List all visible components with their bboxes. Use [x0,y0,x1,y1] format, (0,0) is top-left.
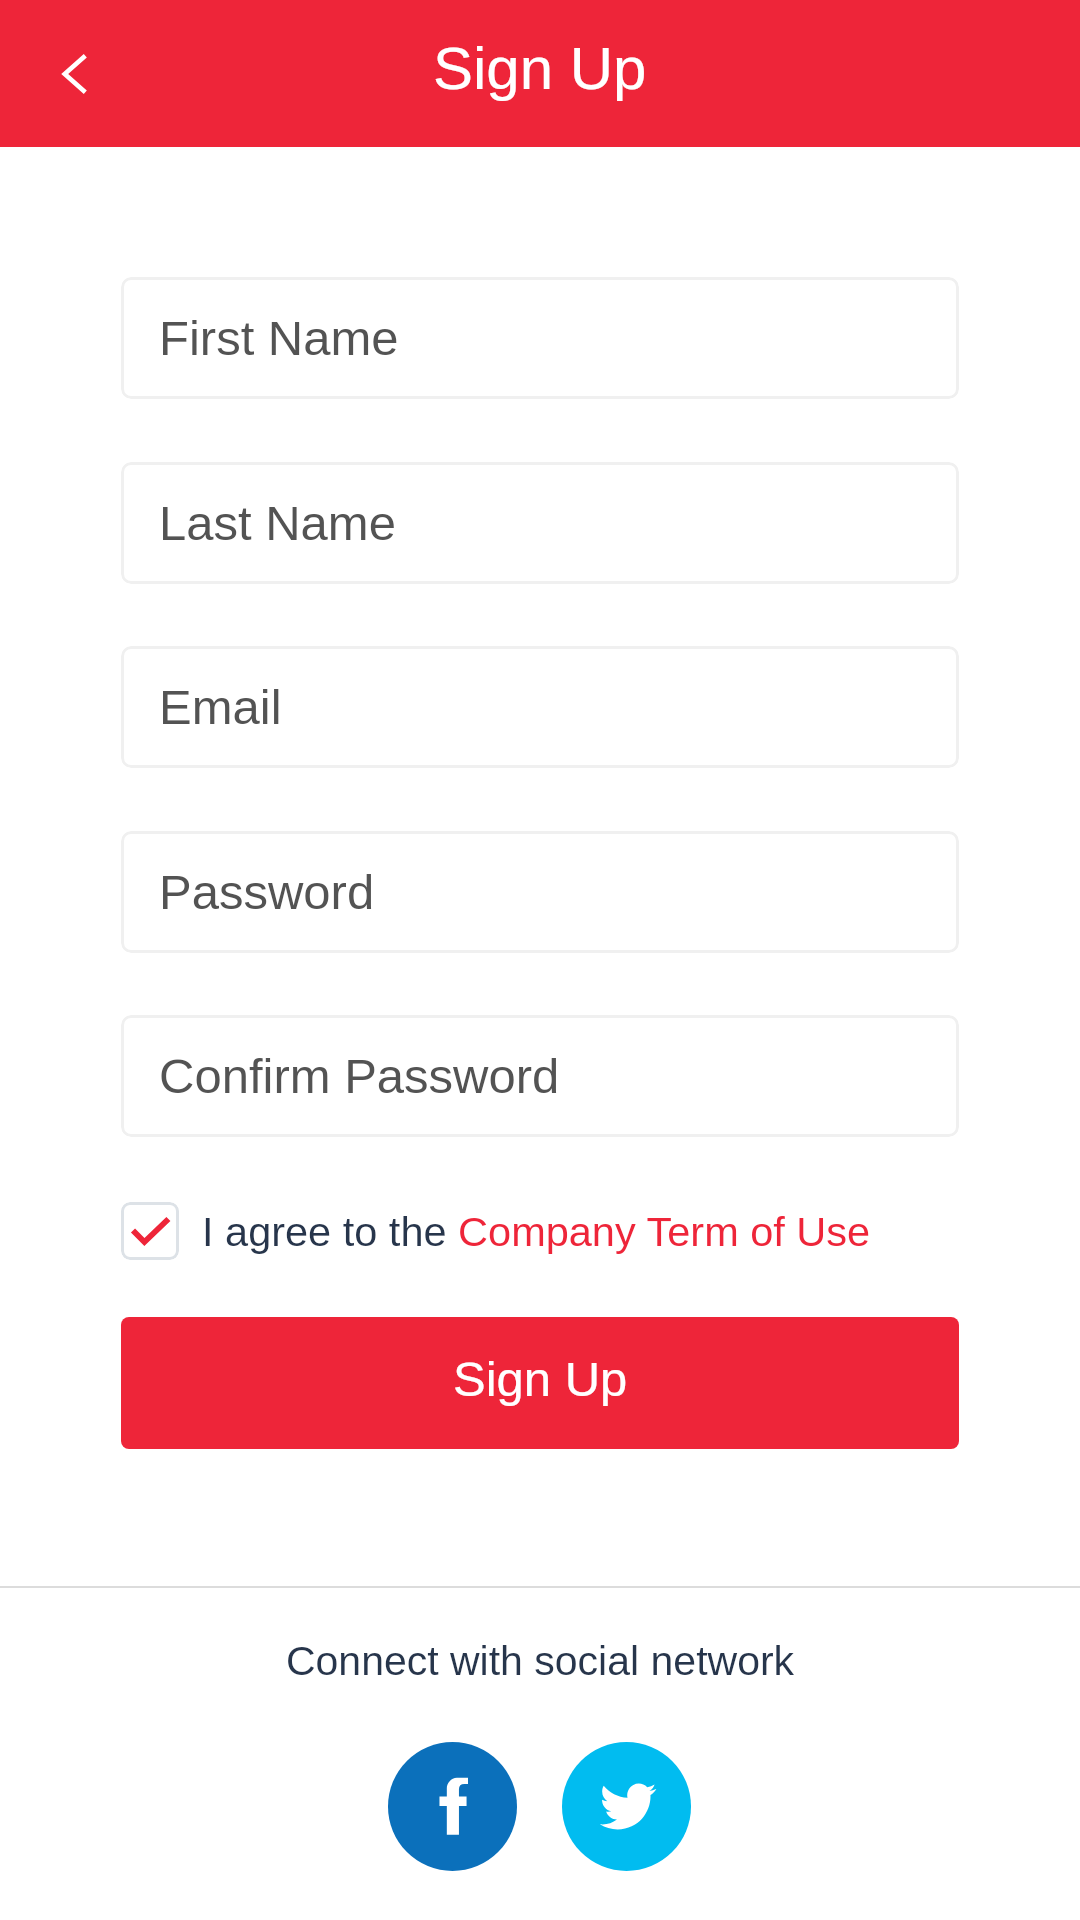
staticText: Sign Up [433,35,647,102]
button[interactable]: Twitter [562,1742,691,1871]
staticText: First Name [159,311,399,366]
button[interactable]: Sign Up [121,1317,959,1449]
staticText: Last Name [159,496,396,551]
staticText: Connect with social network [0,1638,1080,1684]
button[interactable]: Back [40,39,110,109]
button[interactable]: Confirm Password [121,1015,959,1137]
staticText: Email [159,680,282,735]
button[interactable]: Email [121,646,959,768]
staticText: Sign Up [453,1352,628,1407]
button[interactable]: Facebook [388,1742,517,1871]
button[interactable]: First Name [121,277,959,399]
button[interactable]: Password [121,831,959,953]
button[interactable]: Last Name [121,462,959,584]
button[interactable]: I agree to the Company Term of Use [121,1202,871,1260]
staticText: Confirm Password [159,1049,560,1104]
staticText: I agree to the Company Term of Use [202,1208,871,1254]
staticText: Password [159,865,375,920]
